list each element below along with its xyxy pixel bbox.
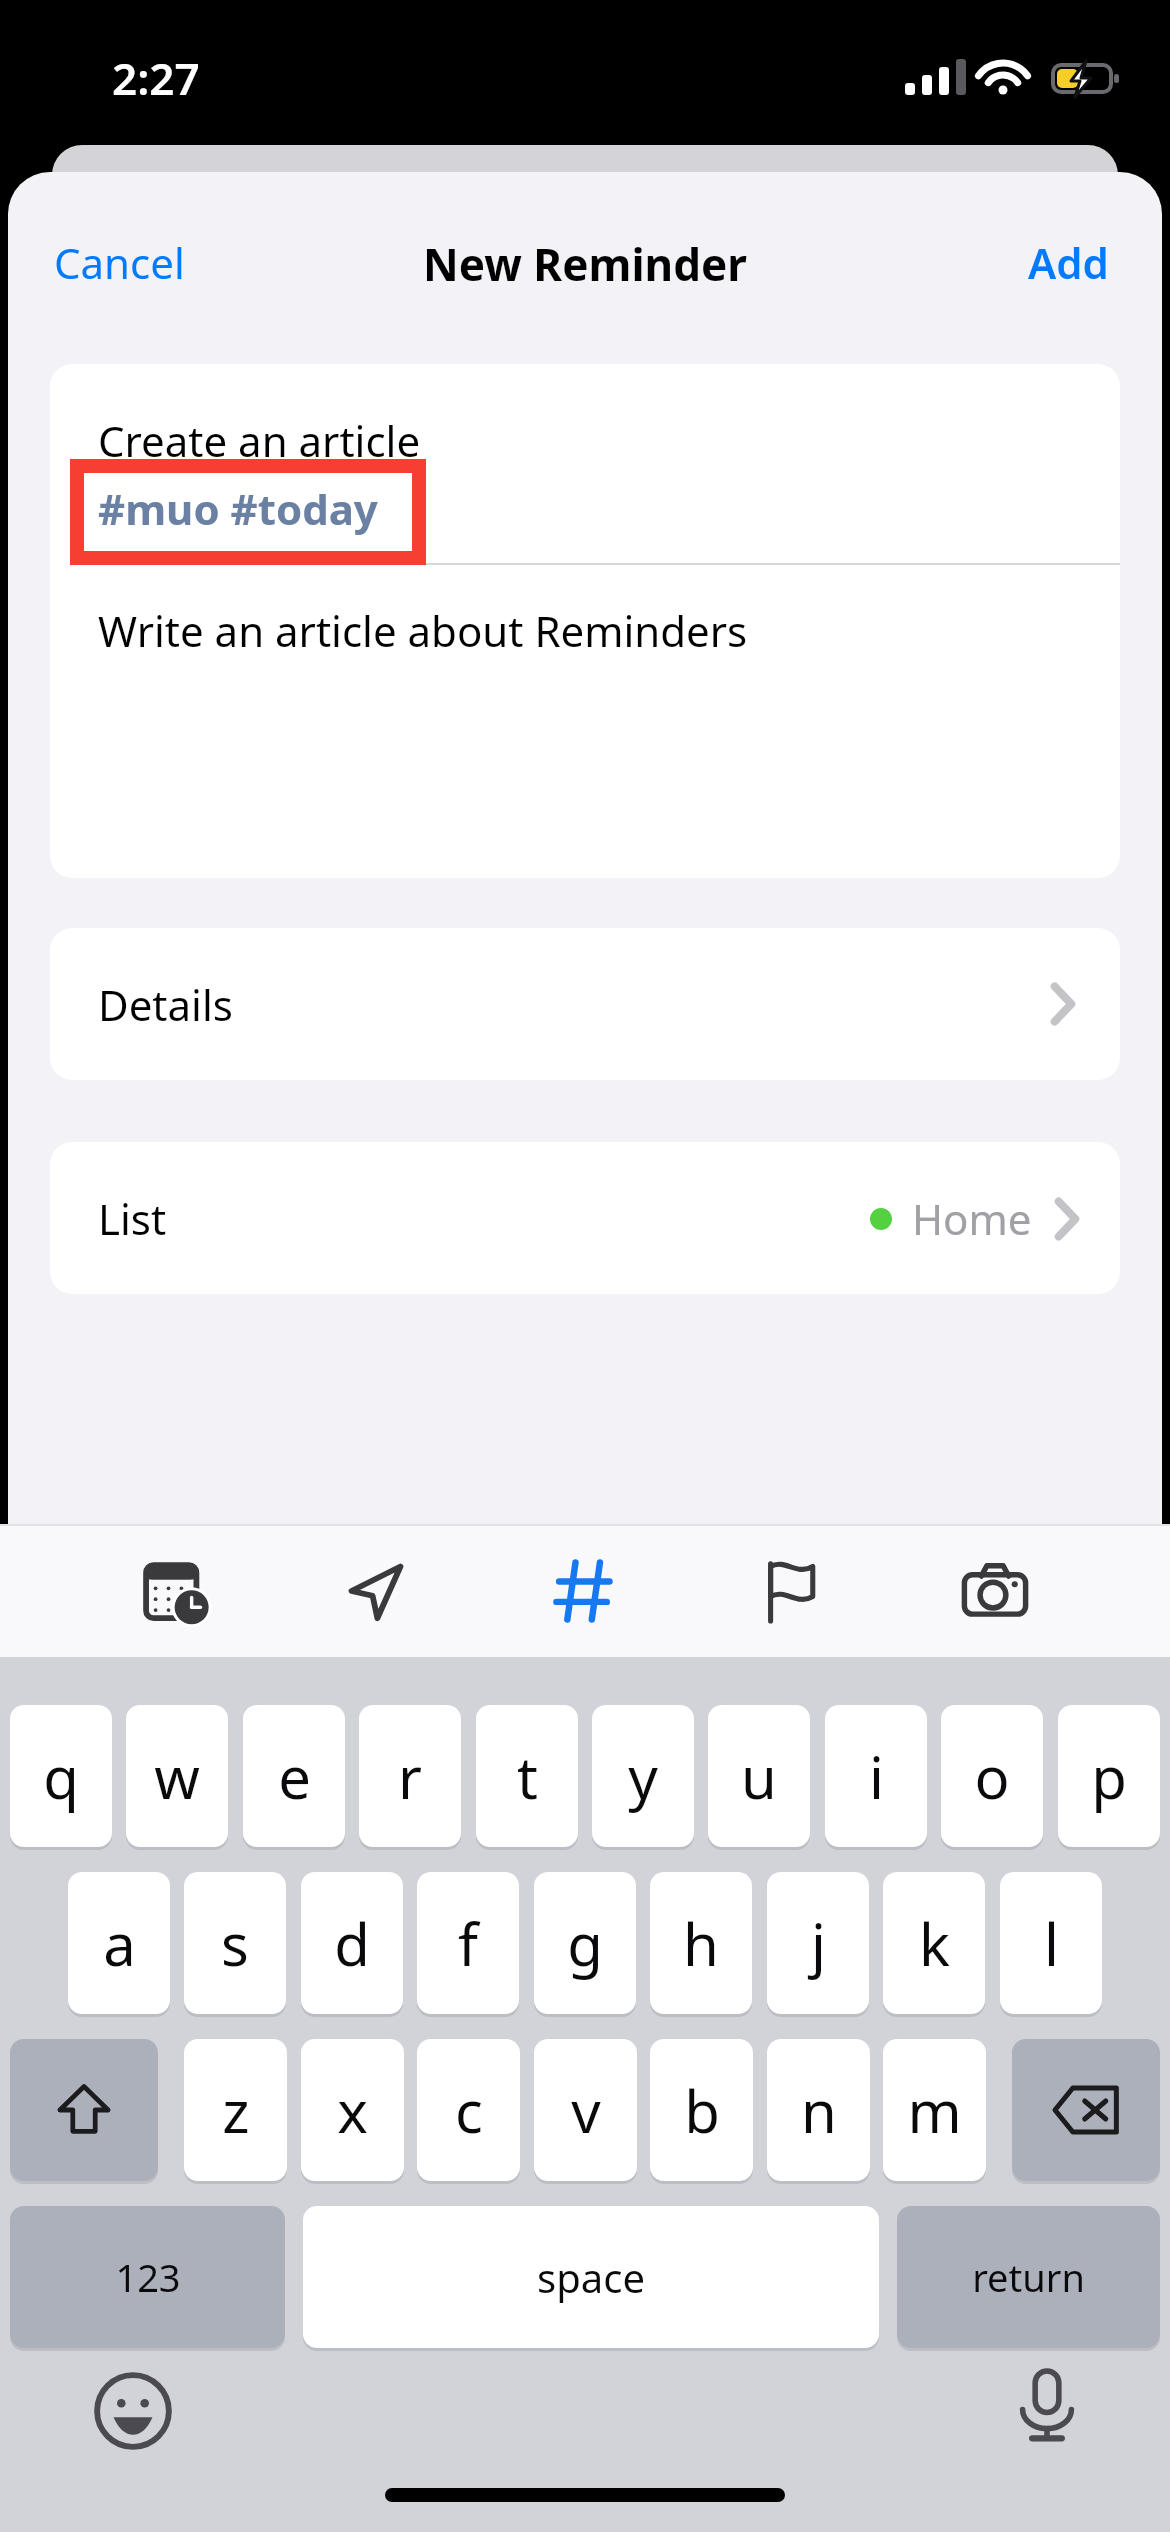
staticText: u xyxy=(741,1737,777,1816)
button[interactable]: Location xyxy=(316,1531,436,1651)
staticText: d xyxy=(334,1904,370,1983)
staticText: y xyxy=(628,1737,658,1816)
button[interactable]: i xyxy=(825,1705,927,1847)
button[interactable]: t xyxy=(476,1705,578,1847)
staticText: q xyxy=(43,1737,79,1816)
staticText: x xyxy=(337,2071,368,2150)
staticText: i xyxy=(869,1737,884,1816)
staticText: return xyxy=(972,2251,1085,2303)
button[interactable]: h xyxy=(650,1872,752,2014)
staticText: a xyxy=(103,1904,136,1983)
button[interactable]: w xyxy=(126,1705,228,1847)
staticText: v xyxy=(571,2071,601,2150)
staticText: Add xyxy=(1028,234,1109,291)
button[interactable]: Backspace xyxy=(1012,2039,1160,2181)
staticText: f xyxy=(458,1904,478,1983)
staticText: Cancel xyxy=(54,234,185,291)
button[interactable]: f xyxy=(417,1872,519,2014)
button[interactable]: l xyxy=(1000,1872,1102,2014)
button[interactable]: space xyxy=(303,2206,879,2348)
staticText: t xyxy=(517,1737,538,1816)
button[interactable]: Add xyxy=(1014,208,1123,318)
button[interactable]: p xyxy=(1058,1705,1160,1847)
staticText: List xyxy=(98,1190,167,1247)
staticText: k xyxy=(919,1904,950,1983)
staticText: g xyxy=(567,1904,603,1983)
staticText: w xyxy=(154,1737,200,1816)
staticText: e xyxy=(278,1737,311,1816)
staticText: r xyxy=(398,1737,422,1816)
button[interactable]: z xyxy=(184,2039,287,2181)
button[interactable]: m xyxy=(883,2039,986,2181)
button[interactable]: b xyxy=(650,2039,753,2181)
button[interactable]: c xyxy=(417,2039,520,2181)
button[interactable]: e xyxy=(243,1705,345,1847)
button[interactable]: k xyxy=(883,1872,985,2014)
staticText: space xyxy=(537,2250,645,2304)
staticText: l xyxy=(1044,1904,1059,1983)
staticText: 2:27 xyxy=(112,48,200,108)
staticText: Details xyxy=(98,976,233,1033)
staticText: o xyxy=(974,1737,1010,1816)
button[interactable]: Tags xyxy=(525,1531,645,1651)
button[interactable]: Camera xyxy=(935,1531,1055,1651)
button[interactable]: a xyxy=(68,1872,170,2014)
button[interactable]: o xyxy=(941,1705,1043,1847)
button[interactable]: 123 xyxy=(10,2206,285,2348)
button[interactable]: s xyxy=(184,1872,286,2014)
button[interactable]: List xyxy=(50,1142,1120,1294)
staticText: h xyxy=(683,1904,719,1983)
button[interactable]: Emoji keyboard xyxy=(74,2352,192,2470)
button[interactable]: Create an article xyxy=(50,364,1120,878)
staticText: c xyxy=(455,2071,483,2150)
staticText: #muo #today xyxy=(98,480,378,537)
button[interactable]: q xyxy=(10,1705,112,1847)
staticText: m xyxy=(907,2071,962,2150)
staticText: z xyxy=(222,2071,250,2150)
button[interactable]: Shift xyxy=(10,2039,158,2181)
button[interactable]: g xyxy=(534,1872,636,2014)
button[interactable]: return xyxy=(897,2206,1160,2348)
button[interactable]: Details xyxy=(50,928,1120,1080)
button[interactable]: Date and time xyxy=(116,1531,236,1651)
button[interactable]: Dictation xyxy=(988,2346,1106,2464)
button[interactable]: y xyxy=(592,1705,694,1847)
staticText: Create an article xyxy=(98,412,421,469)
button[interactable]: Flag xyxy=(731,1531,851,1651)
button[interactable]: Cancel xyxy=(40,208,199,318)
button[interactable]: u xyxy=(708,1705,810,1847)
staticText: p xyxy=(1091,1737,1127,1816)
button[interactable]: r xyxy=(359,1705,461,1847)
staticText: b xyxy=(684,2071,720,2150)
button[interactable]: n xyxy=(767,2039,870,2181)
staticText: n xyxy=(801,2071,837,2150)
staticText: New Reminder xyxy=(0,234,1170,294)
button[interactable]: d xyxy=(301,1872,403,2014)
button[interactable]: v xyxy=(534,2039,637,2181)
staticText: s xyxy=(221,1904,249,1983)
button[interactable]: x xyxy=(301,2039,404,2181)
staticText: Write an article about Reminders xyxy=(98,602,748,659)
staticText: Home xyxy=(912,1190,1032,1247)
staticText: 123 xyxy=(115,2251,181,2303)
button[interactable]: j xyxy=(767,1872,869,2014)
staticText: j xyxy=(811,1904,826,1983)
